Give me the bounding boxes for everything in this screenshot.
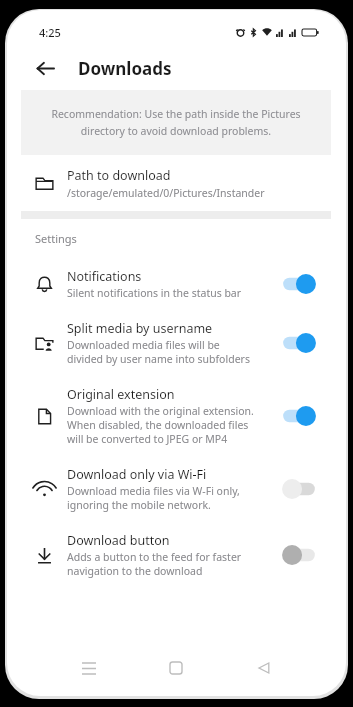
staticText: Download only via Wi-Fi: [67, 466, 207, 483]
button[interactable]: Split media by username: [21, 310, 331, 376]
staticText: Path to download: [67, 167, 171, 184]
staticText: Download with the original extension. Wh…: [67, 404, 254, 446]
button[interactable]: Download button: [21, 522, 331, 588]
staticText: Adds a button to the feed for faster nav…: [67, 550, 242, 578]
staticText: Silent notifications in the status bar: [67, 286, 242, 300]
button[interactable]: Recents: [69, 649, 109, 687]
staticText: /storage/emulated/0/Pictures/Instander: [67, 186, 265, 200]
button[interactable]: Original extension: [21, 376, 331, 456]
staticText: Recommendation: Use the path inside the …: [51, 107, 301, 138]
staticText: Download button: [67, 532, 170, 549]
button[interactable]: Path to download: [21, 155, 331, 211]
button[interactable]: Download only via Wi-Fi: [279, 475, 319, 503]
staticText: Settings: [35, 231, 77, 246]
button[interactable]: Original extension: [279, 402, 319, 430]
staticText: Downloads: [78, 57, 172, 80]
staticText: Notifications: [67, 268, 142, 285]
button[interactable]: Back: [244, 649, 284, 687]
button[interactable]: Notifications: [279, 270, 319, 298]
staticText: Original extension: [67, 386, 175, 403]
button[interactable]: Download button: [279, 541, 319, 569]
button[interactable]: Home: [156, 649, 196, 687]
staticText: Split media by username: [67, 320, 213, 337]
staticText: Downloaded media files will be divided b…: [67, 338, 250, 366]
staticText: 4:25: [39, 25, 61, 40]
button[interactable]: Notifications: [21, 258, 331, 310]
button[interactable]: Split media by username: [279, 329, 319, 357]
button[interactable]: Back: [27, 50, 63, 86]
button[interactable]: Download only via Wi-Fi: [21, 456, 331, 522]
staticText: Download media files via W-Fi only, igno…: [67, 484, 240, 512]
